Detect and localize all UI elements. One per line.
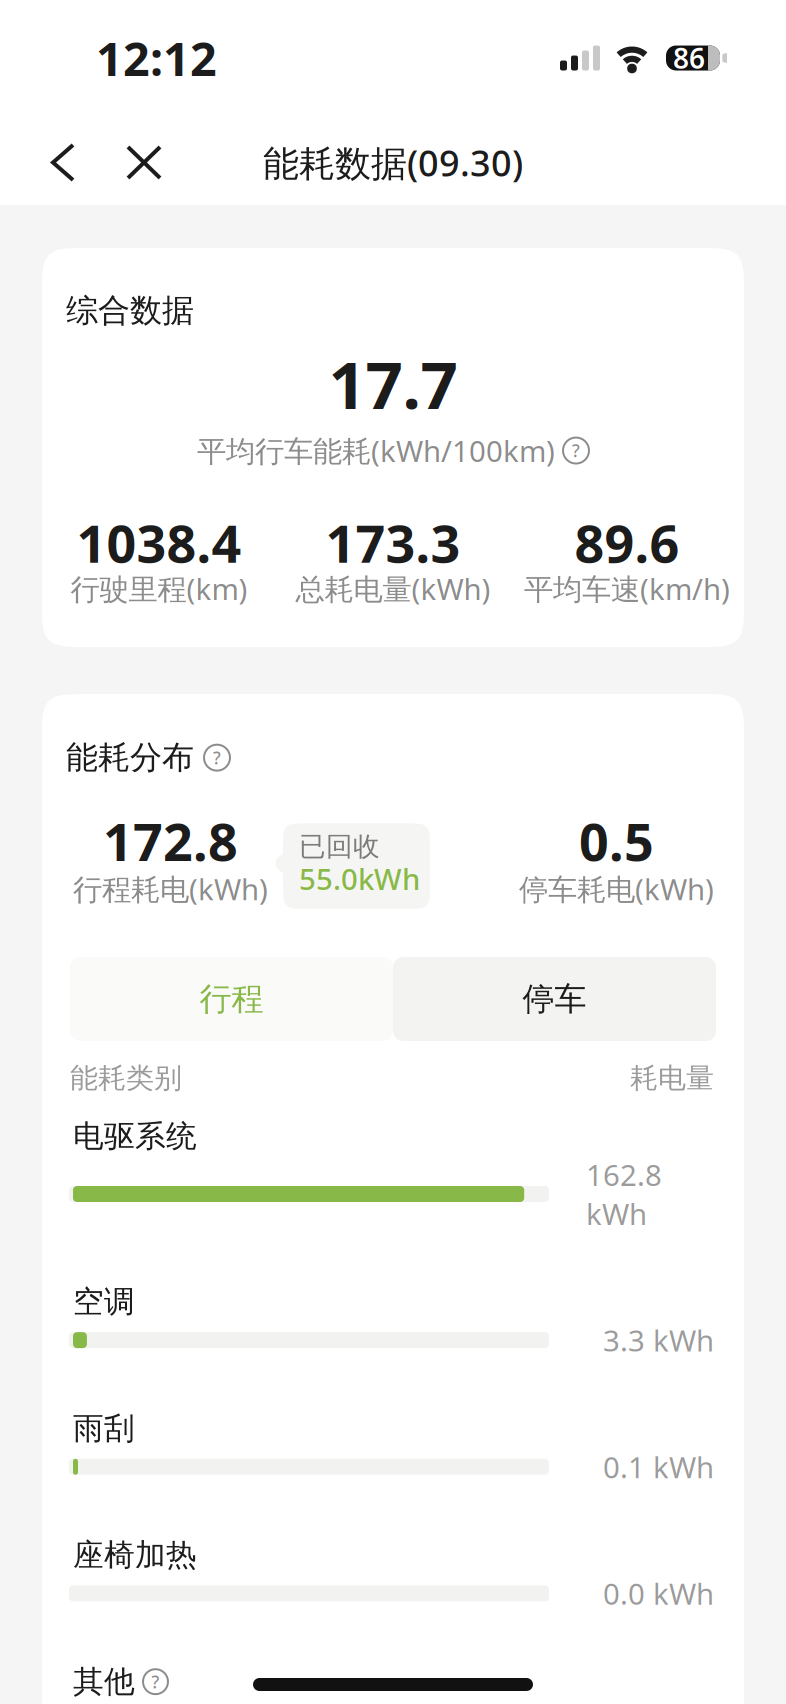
staticText: 17.7: [328, 340, 457, 427]
staticText: 总耗电量(kWh): [295, 569, 490, 608]
staticText: ?: [151, 1670, 159, 1693]
staticText: 已回收: [299, 830, 380, 863]
button[interactable]: 停车: [393, 957, 716, 1041]
staticText: 电驱系统: [73, 1117, 197, 1155]
staticText: 1038.4: [76, 508, 241, 577]
staticText: 行程: [199, 979, 263, 1019]
staticText: 86: [673, 39, 705, 77]
staticText: 162.8: [586, 1155, 662, 1194]
button[interactable]: 行程: [70, 957, 393, 1041]
button[interactable]: Close: [128, 147, 160, 178]
staticText: 空调: [73, 1283, 135, 1321]
staticText: 89.6: [574, 508, 679, 577]
staticText: 其他: [73, 1663, 135, 1700]
staticText: 0.0 kWh: [603, 1574, 714, 1613]
button[interactable]: Back: [0, 145, 128, 180]
staticText: 0.1 kWh: [603, 1447, 714, 1486]
staticText: 能耗分布: [66, 738, 194, 777]
staticText: 停车: [522, 979, 586, 1019]
staticText: 雨刮: [73, 1410, 135, 1447]
staticText: 平均车速(km/h): [524, 569, 730, 608]
staticText: 座椅加热: [73, 1536, 197, 1574]
staticText: 172.8: [103, 806, 238, 875]
staticText: 173.3: [325, 508, 460, 577]
staticText: 3.3 kWh: [603, 1321, 714, 1360]
staticText: 行驶里程(km): [70, 569, 247, 608]
staticText: ?: [213, 746, 221, 769]
staticText: 平均行车能耗(kWh/100km): [197, 431, 555, 470]
staticText: 12:12: [96, 27, 217, 89]
staticText: 0.5: [579, 806, 654, 875]
staticText: 综合数据: [66, 291, 194, 330]
staticText: 耗电量: [630, 1061, 714, 1095]
staticText: ?: [572, 439, 580, 462]
staticText: 能耗类别: [70, 1061, 182, 1095]
staticText: 55.0kWh: [299, 859, 420, 898]
staticText: 行程耗电(kWh): [73, 869, 268, 908]
staticText: kWh: [586, 1194, 647, 1233]
staticText: 停车耗电(kWh): [519, 869, 714, 908]
staticText: 能耗数据(09.30): [263, 139, 523, 186]
